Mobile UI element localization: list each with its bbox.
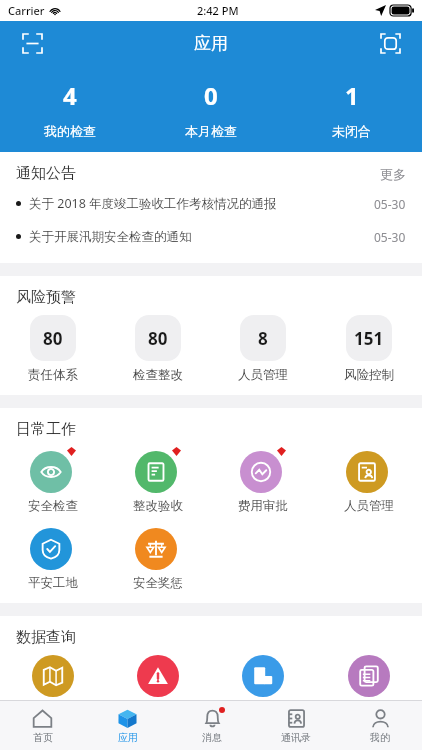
staticText: 日常工作	[16, 420, 76, 439]
staticText: 通讯录	[281, 731, 311, 744]
staticText: 风险控制	[344, 367, 394, 383]
staticText: 0	[204, 79, 218, 112]
button[interactable]: 安全奖惩	[105, 524, 210, 591]
button[interactable]: Scan	[14, 25, 50, 61]
staticText: 更多	[380, 166, 406, 182]
button[interactable]: 应用	[85, 701, 170, 750]
staticText: 关于 2018 年度竣工验收工作考核情况的通报	[29, 195, 277, 212]
button[interactable]: Data query item	[316, 655, 422, 697]
button[interactable]: 人员管理	[316, 447, 422, 514]
staticText: 80	[43, 327, 63, 350]
staticText: 整改验收	[133, 498, 183, 514]
button[interactable]: 80	[0, 315, 105, 383]
staticText: 数据查询	[16, 628, 76, 647]
button[interactable]: 安全检查	[0, 447, 105, 514]
staticText: 151	[354, 327, 384, 350]
staticText: 应用	[118, 731, 138, 744]
button[interactable]: 整改验收	[105, 447, 210, 514]
button[interactable]: 消息	[170, 701, 254, 750]
staticText: 1	[345, 79, 359, 112]
staticText: 未闭合	[332, 123, 371, 139]
button[interactable]: Data query item	[105, 655, 210, 697]
staticText: 责任体系	[28, 367, 78, 383]
button[interactable]: 关于 2018 年度竣工验收工作考核情况的通报	[0, 187, 422, 220]
button[interactable]: 我的	[338, 701, 422, 750]
button[interactable]: 4	[0, 65, 140, 152]
button[interactable]: Data query item	[0, 655, 105, 697]
staticText: Carrier	[8, 3, 45, 18]
staticText: 2:42 PM	[197, 3, 239, 18]
staticText: 80	[148, 327, 168, 350]
staticText: 关于开展汛期安全检查的通知	[29, 229, 192, 245]
staticText: 检查整改	[133, 367, 183, 383]
staticText: 安全奖惩	[133, 575, 183, 591]
button[interactable]: 更多	[380, 166, 406, 182]
button[interactable]: 通讯录	[254, 701, 338, 750]
staticText: 人员管理	[238, 367, 288, 383]
staticText: 风险预警	[16, 288, 76, 307]
staticText: 通知公告	[16, 164, 76, 183]
button[interactable]: 0	[140, 65, 281, 152]
button[interactable]: 关于开展汛期安全检查的通知	[0, 220, 422, 253]
staticText: 平安工地	[28, 575, 78, 591]
button[interactable]: 首页	[0, 701, 85, 750]
button[interactable]: 平安工地	[0, 524, 105, 591]
staticText: 05-30	[374, 196, 406, 212]
button[interactable]: 80	[105, 315, 210, 383]
staticText: 安全检查	[28, 498, 78, 514]
button[interactable]: 费用审批	[210, 447, 316, 514]
staticText: 05-30	[374, 229, 406, 245]
staticText: 首页	[33, 731, 53, 744]
button[interactable]: 8	[210, 315, 316, 383]
staticText: 我的检查	[44, 123, 96, 139]
button[interactable]: Focus	[372, 25, 408, 61]
staticText: 消息	[202, 731, 222, 744]
button[interactable]: Data query item	[210, 655, 316, 697]
staticText: 人员管理	[344, 498, 394, 514]
staticText: 我的	[370, 731, 390, 744]
staticText: 8	[258, 327, 268, 350]
staticText: 4	[63, 79, 77, 112]
staticText: 本月检查	[185, 123, 237, 139]
staticText: 费用审批	[238, 498, 288, 514]
button[interactable]: 151	[316, 315, 422, 383]
button[interactable]: 1	[281, 65, 422, 152]
staticText: 应用	[194, 33, 228, 54]
